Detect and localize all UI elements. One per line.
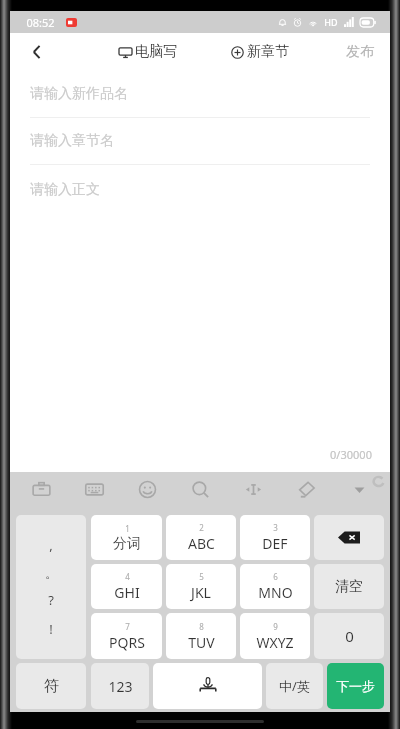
button[interactable]: 123 (91, 663, 149, 709)
staticText: 8 (199, 621, 204, 632)
button[interactable]: 新章节 (225, 39, 295, 65)
button[interactable]: Emoji (130, 472, 164, 506)
button[interactable]: 电脑写 (113, 39, 183, 65)
staticText: 4 (125, 571, 130, 582)
button[interactable]: Hide keyboard (342, 472, 376, 506)
staticText: ! (49, 620, 53, 638)
staticText: 1 (125, 523, 130, 534)
staticText: 请输入章节名 (30, 132, 114, 150)
staticText: ABC (188, 534, 215, 553)
button[interactable]: Clipboard (24, 472, 58, 506)
button[interactable]: 请输入章节名 (10, 118, 390, 164)
button[interactable]: Delete (314, 515, 384, 560)
staticText: 分词 (113, 535, 141, 553)
button[interactable]: 6 (240, 564, 310, 609)
button[interactable]: 2 (166, 515, 236, 560)
button[interactable]: 8 (166, 613, 236, 659)
staticText: 清空 (335, 578, 363, 596)
staticText: 电脑写 (135, 43, 177, 61)
button[interactable]: Back (16, 33, 58, 71)
staticText: , (49, 536, 53, 554)
staticText: HD (324, 16, 338, 28)
staticText: 发布 (346, 43, 374, 61)
staticText: WXYZ (256, 633, 294, 652)
staticText: 7 (125, 621, 130, 632)
button[interactable]: 清空 (314, 564, 384, 609)
button[interactable]: 发布 (330, 35, 390, 69)
staticText: JKL (191, 583, 211, 602)
staticText: 123 (108, 677, 133, 696)
button[interactable]: 4 (91, 564, 162, 609)
staticText: 5 (199, 571, 204, 582)
staticText: 3 (273, 522, 278, 533)
staticText: GHI (114, 583, 140, 602)
button[interactable]: Keyboard layout (77, 472, 111, 506)
button[interactable]: Voice input (153, 663, 262, 709)
staticText: 2 (199, 522, 204, 533)
button[interactable]: Search (183, 472, 217, 506)
button[interactable]: 3 (240, 515, 310, 560)
staticText: MNO (258, 583, 293, 602)
staticText: 请输入正文 (30, 181, 100, 199)
button[interactable]: 符 (16, 663, 86, 709)
staticText: 符 (44, 677, 59, 696)
button[interactable]: 0 (314, 613, 384, 659)
button[interactable]: 请输入新作品名 (10, 71, 390, 117)
staticText: 新章节 (247, 43, 289, 61)
staticText: 08:52 (26, 15, 55, 30)
staticText: 中/英 (279, 677, 310, 695)
staticText: 请输入新作品名 (30, 85, 128, 103)
button[interactable]: 下一步 (327, 663, 384, 709)
button[interactable]: 9 (240, 613, 310, 659)
button[interactable]: 5 (166, 564, 236, 609)
staticText: ? (48, 591, 54, 609)
staticText: 6 (273, 571, 278, 582)
button[interactable]: 7 (91, 613, 162, 659)
staticText: 0/30000 (330, 447, 372, 462)
staticText: 0 (345, 626, 354, 646)
staticText: TUV (188, 633, 215, 652)
button[interactable]: 1 (91, 515, 162, 560)
staticText: PQRS (109, 633, 145, 652)
staticText: 下一步 (336, 678, 375, 694)
button[interactable]: Move cursor (236, 472, 270, 506)
button[interactable]: Theme (289, 472, 323, 506)
staticText: DEF (262, 534, 288, 553)
button[interactable]: , (16, 515, 86, 659)
staticText: 9 (273, 621, 278, 632)
button[interactable]: 中/英 (266, 663, 323, 709)
staticText: 。 (45, 565, 58, 581)
